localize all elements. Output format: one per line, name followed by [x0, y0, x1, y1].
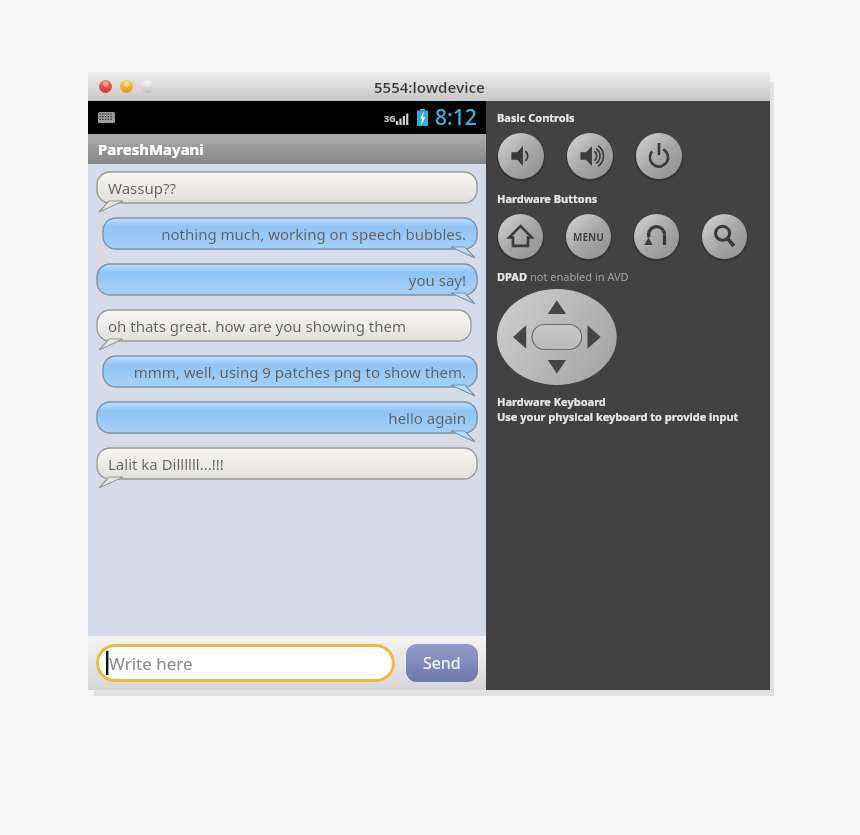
button[interactable]: Volume up [566, 132, 614, 180]
staticText: Lalit ka Dillllll...!!! [108, 454, 466, 474]
staticText: Use your physical keyboard to provide in… [497, 409, 739, 424]
button[interactable]: Search [701, 213, 748, 260]
button[interactable]: Write here [96, 644, 395, 682]
button[interactable]: Menu [565, 213, 612, 260]
button[interactable]: Volume down [497, 132, 545, 180]
button[interactable]: Power [635, 132, 683, 180]
button[interactable]: Lalit ka Dillllll...!!! [97, 448, 477, 488]
staticText: Hardware Keyboard [497, 394, 606, 409]
button[interactable]: you say! [97, 264, 477, 304]
staticText: Hardware Buttons [497, 191, 598, 206]
staticText: DPAD [497, 269, 530, 284]
staticText: MENU [573, 230, 604, 244]
staticText: oh thats great. how are you showing them [108, 316, 460, 336]
button[interactable]: nothing much, working on speech bubbles. [103, 218, 477, 258]
staticText: 8:12 [435, 103, 477, 132]
staticText: mmm, well, using 9 patches png to show t… [114, 362, 466, 382]
staticText: 3G [384, 112, 396, 124]
button[interactable]: mmm, well, using 9 patches png to show t… [103, 356, 477, 396]
staticText: hello again [108, 408, 466, 428]
button[interactable]: D-pad [497, 289, 643, 385]
staticText: not enabled in AVD [530, 269, 629, 284]
button[interactable]: Send [406, 644, 478, 682]
staticText: Wassup?? [108, 178, 466, 198]
staticText: you say! [108, 270, 466, 290]
staticText: Write here [109, 652, 193, 675]
button[interactable]: Home [497, 213, 544, 260]
button[interactable]: Wassup?? [97, 172, 477, 212]
staticText: Basic Controls [497, 110, 575, 125]
staticText: Send [423, 652, 461, 674]
button[interactable]: hello again [97, 402, 477, 442]
staticText: 5554:lowdevice [374, 77, 485, 97]
staticText: nothing much, working on speech bubbles. [114, 224, 466, 244]
button[interactable]: Back [633, 213, 680, 260]
button[interactable]: oh thats great. how are you showing them [97, 310, 471, 350]
staticText: PareshMayani [98, 139, 204, 159]
